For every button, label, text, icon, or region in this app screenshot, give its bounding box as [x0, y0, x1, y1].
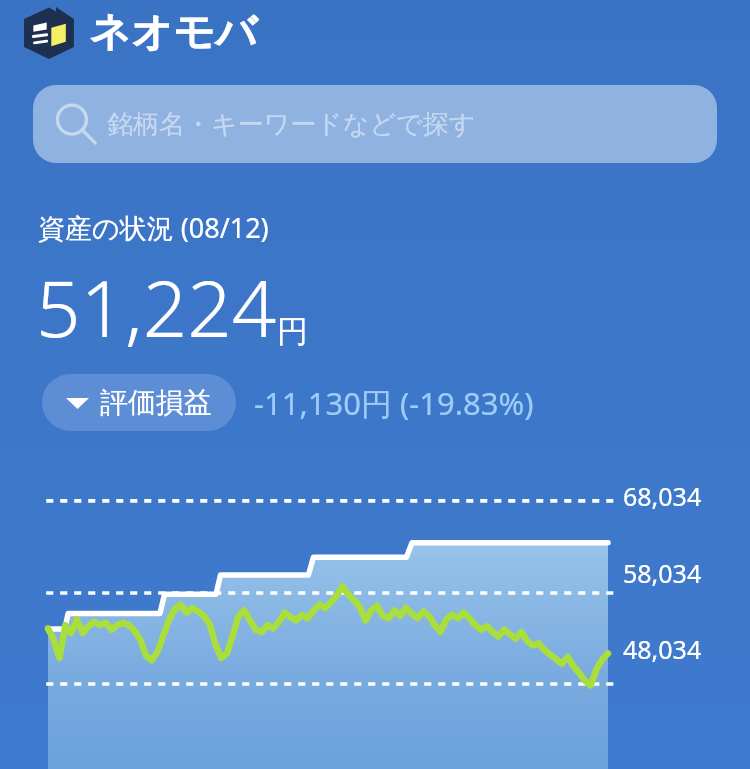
staticText: 48,034 [623, 632, 702, 666]
staticText: 資産の状況 (08/12) [38, 209, 269, 246]
staticText: -11,130円 (-19.83%) [254, 382, 534, 424]
staticText: 51,224 [36, 254, 277, 360]
button[interactable]: Neomoba logo [20, 4, 257, 62]
button[interactable]: 評価損益 [42, 374, 236, 431]
staticText: 銘柄名・キーワードなどで探す [107, 108, 476, 141]
staticText: ネオモバ [89, 7, 257, 59]
staticText: 円 [277, 312, 308, 351]
staticText: 58,034 [623, 556, 702, 590]
other: Neomoba logo [20, 4, 78, 62]
staticText: 評価損益 [100, 385, 212, 420]
button[interactable]: Search stocks [33, 85, 717, 163]
staticText: 68,034 [623, 479, 702, 513]
